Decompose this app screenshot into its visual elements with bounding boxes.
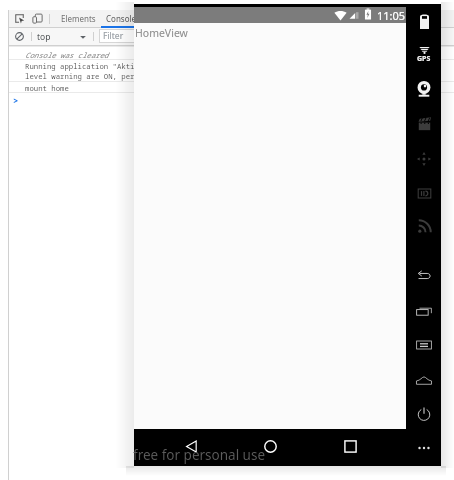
button[interactable]: Back	[411, 263, 437, 289]
staticText: mount home	[25, 83, 69, 93]
staticText: >	[13, 94, 19, 106]
button[interactable]: Device ID	[411, 180, 437, 206]
button[interactable]: Context selector	[77, 31, 88, 42]
button[interactable]: Back	[179, 434, 203, 458]
button[interactable]: Location GPS	[411, 42, 437, 68]
staticText: Elements	[61, 13, 96, 24]
staticText: Running application "Akti level warning …	[25, 61, 135, 81]
button[interactable]: top	[35, 29, 55, 44]
staticText: Console	[106, 13, 137, 24]
button[interactable]: Filter	[99, 29, 143, 43]
button[interactable]: Menu	[411, 332, 437, 358]
button[interactable]: Home	[411, 367, 437, 393]
staticText: HomeView	[135, 26, 188, 40]
staticText: free for personal use	[133, 446, 266, 464]
staticText: Lope	[441, 60, 454, 71]
button[interactable]: Power on/off device	[411, 8, 437, 34]
button[interactable]: Inspect element	[12, 11, 27, 26]
button[interactable]: Cellular	[411, 213, 437, 239]
button[interactable]: Overview	[411, 298, 437, 324]
staticText: lits	[442, 17, 454, 29]
staticText: GPS	[417, 54, 431, 64]
button[interactable]: Clear console	[12, 29, 27, 44]
button[interactable]: Camera	[411, 76, 437, 102]
button[interactable]: Toggle device toolbar	[30, 11, 45, 26]
staticText: Filter	[103, 30, 124, 42]
button[interactable]: Elements	[56, 10, 100, 27]
staticText: top	[37, 31, 51, 43]
staticText: Console was cleared	[25, 50, 109, 60]
button[interactable]: Virtual sensors	[411, 146, 437, 172]
staticText: 11:05	[377, 8, 406, 23]
button[interactable]: Recent apps	[338, 434, 362, 458]
button[interactable]: Home	[258, 434, 282, 458]
button[interactable]: Power	[411, 401, 437, 427]
button[interactable]: Console	[101, 10, 141, 27]
button[interactable]: Record screen	[411, 111, 437, 137]
button[interactable]: More	[411, 435, 437, 461]
